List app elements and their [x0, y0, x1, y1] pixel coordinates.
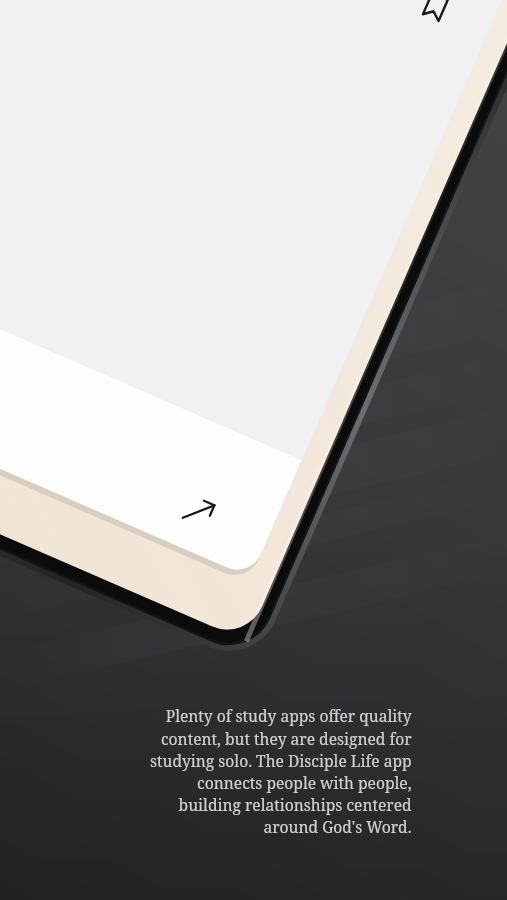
button[interactable]: Disciple Life app preview [0, 0, 507, 900]
